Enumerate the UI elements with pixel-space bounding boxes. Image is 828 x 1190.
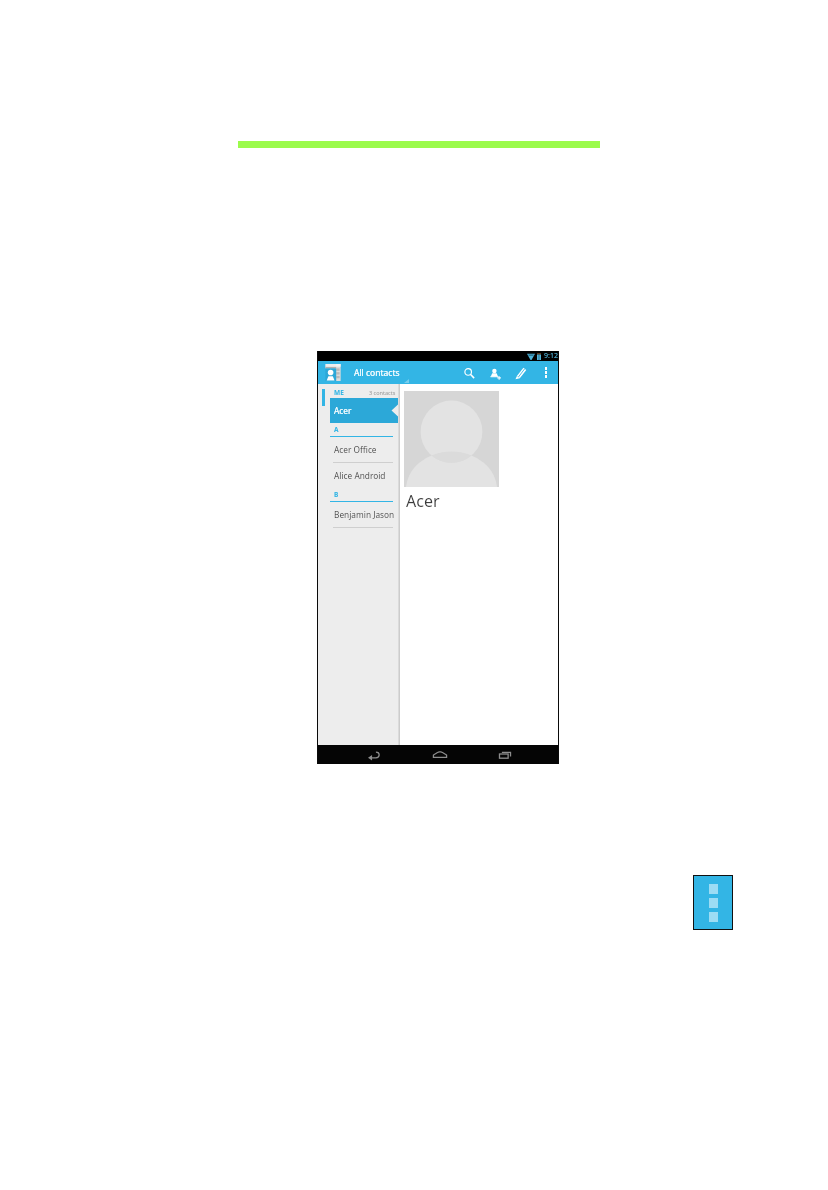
staticText: Acer Office [334, 444, 377, 455]
staticText: All contacts [354, 367, 400, 379]
button[interactable]: More options [537, 364, 554, 381]
button[interactable]: Recents [495, 745, 515, 764]
button[interactable]: Contacts [325, 364, 342, 381]
staticText: Acer [334, 405, 352, 416]
staticText: A [334, 425, 339, 434]
button[interactable]: Benjamin Jason [334, 502, 398, 527]
button[interactable]: Acer Office [334, 437, 398, 462]
button[interactable]: Edit [511, 363, 531, 383]
staticText: 9:12 [544, 351, 558, 361]
button[interactable]: Add contact [485, 363, 505, 383]
staticText: Acer [406, 490, 440, 512]
staticText: ME [334, 388, 344, 397]
button[interactable]: Search [459, 363, 479, 383]
staticText: Benjamin Jason [334, 509, 395, 520]
button[interactable]: Acer [330, 398, 398, 423]
button[interactable]: Back [364, 745, 384, 764]
button[interactable]: Overflow menu [694, 876, 732, 929]
staticText: Alice Android [334, 470, 386, 481]
button[interactable]: Home [430, 745, 450, 764]
staticText: 3 contacts [369, 389, 396, 396]
button[interactable]: Alice Android [334, 463, 398, 488]
staticText: B [334, 490, 339, 499]
